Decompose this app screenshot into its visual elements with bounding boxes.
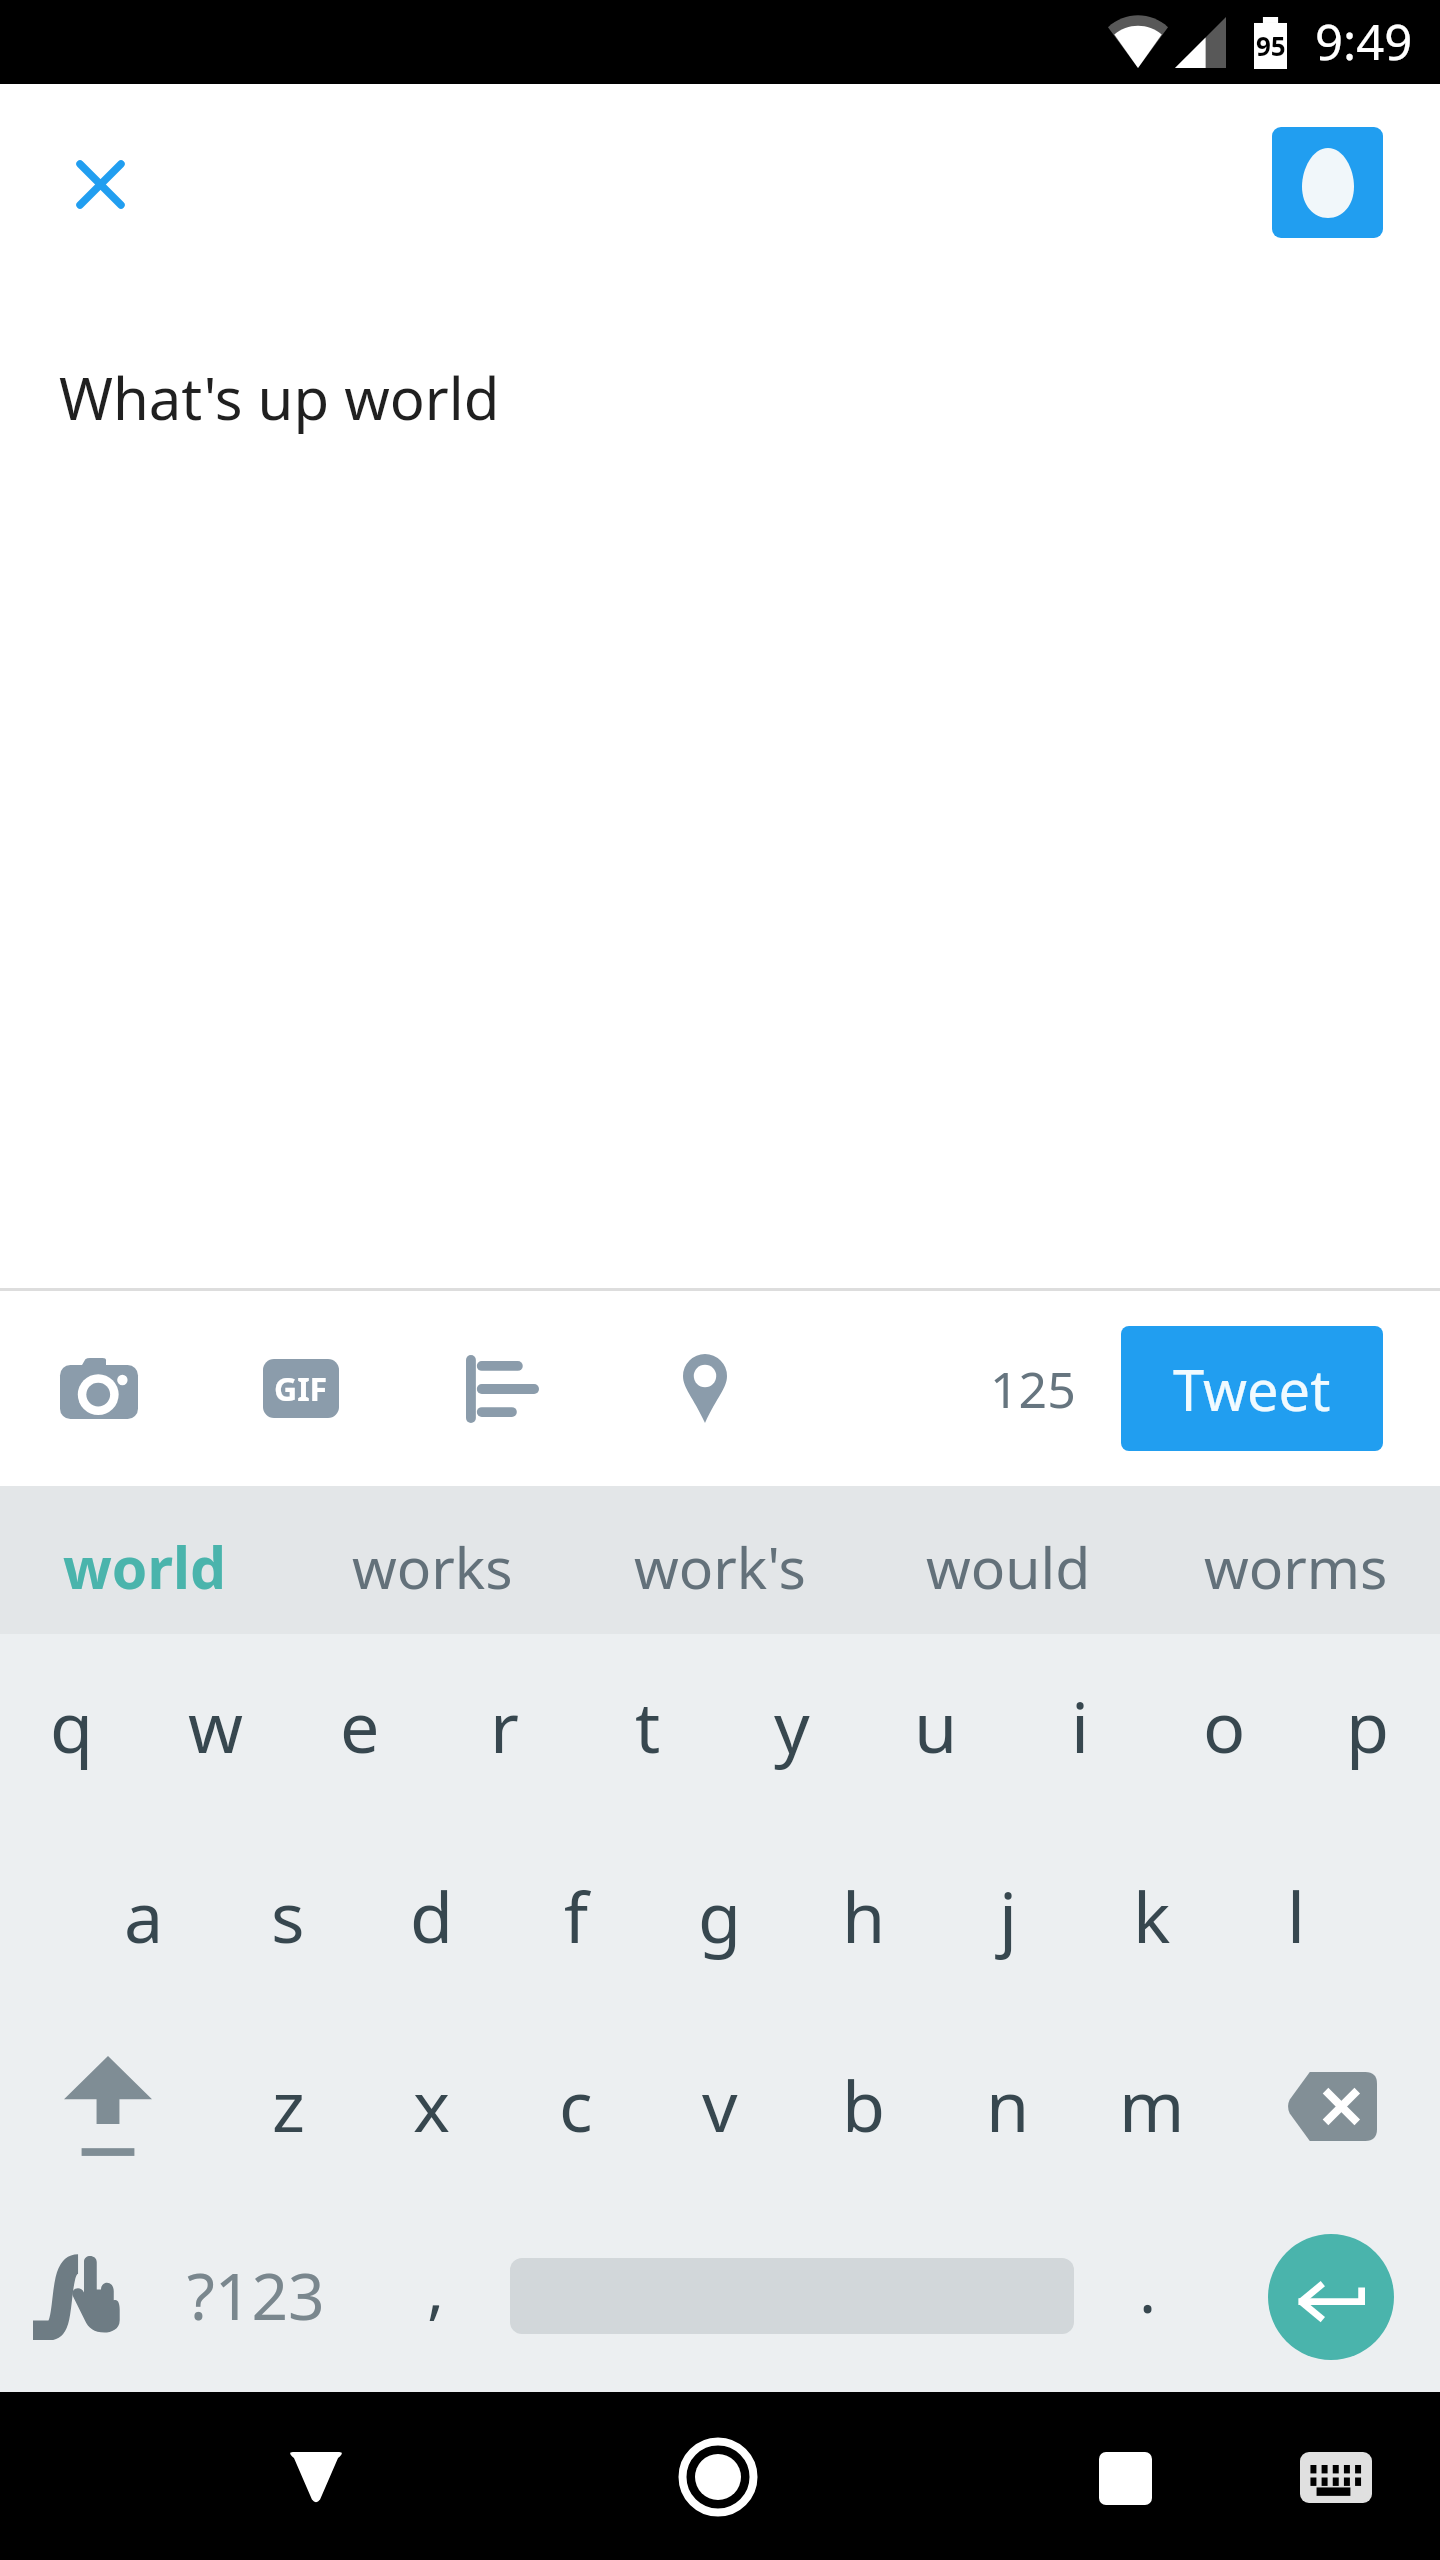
button[interactable]: i [1008, 1642, 1152, 1802]
staticText: 95 [1256, 28, 1286, 63]
staticText: GIF [274, 1367, 328, 1411]
staticText: w [188, 1678, 244, 1773]
staticText: m [1119, 2057, 1185, 2152]
staticText: v [702, 2057, 738, 2152]
staticText: q [50, 1678, 94, 1773]
button[interactable]: c [504, 2007, 648, 2195]
staticText: a [124, 1868, 164, 1963]
button[interactable]: Close [38, 129, 158, 249]
button[interactable]: g [648, 1832, 792, 1992]
button[interactable]: Space [510, 2197, 1074, 2387]
staticText: would [926, 1528, 1091, 1606]
button[interactable]: e [288, 1642, 432, 1802]
staticText: 9:49 [1315, 8, 1413, 75]
staticText: z [272, 2057, 305, 2152]
button[interactable]: h [792, 1832, 936, 1992]
staticText: world [63, 1528, 226, 1606]
button[interactable]: Hide keyboard [236, 2392, 396, 2560]
staticText: k [1133, 1868, 1171, 1963]
button[interactable]: Home [638, 2392, 798, 2560]
button[interactable]: y [720, 1642, 864, 1802]
staticText: , [427, 2245, 445, 2332]
button[interactable]: n [936, 2007, 1080, 2195]
button[interactable]: x [360, 2007, 504, 2195]
staticText: s [271, 1868, 305, 1963]
staticText: n [986, 2057, 1030, 2152]
staticText: p [1346, 1678, 1390, 1773]
button[interactable]: v [648, 2007, 792, 2195]
staticText: work's [634, 1528, 806, 1606]
staticText: . [1139, 2245, 1157, 2332]
button[interactable]: f [504, 1832, 648, 1992]
button[interactable]: r [432, 1642, 576, 1802]
button[interactable]: . [1074, 2197, 1222, 2387]
button[interactable]: Location [615, 1291, 795, 1486]
staticText: t [635, 1678, 661, 1773]
staticText: Tweet [1173, 1351, 1331, 1427]
staticText: u [914, 1678, 958, 1773]
button[interactable]: l [1224, 1832, 1368, 1992]
button[interactable]: Tweet [1121, 1326, 1383, 1451]
button[interactable]: Profile [1272, 127, 1383, 238]
button[interactable]: j [936, 1832, 1080, 1992]
staticText: worms [1204, 1528, 1388, 1606]
button[interactable]: p [1296, 1642, 1440, 1802]
button[interactable]: Switch keyboard [1256, 2392, 1416, 2560]
staticText: works [352, 1528, 513, 1606]
button[interactable]: Recents [1045, 2392, 1205, 2560]
staticText: y [774, 1678, 810, 1773]
button[interactable]: d [360, 1832, 504, 1992]
staticText: o [1203, 1678, 1246, 1773]
button[interactable]: w [144, 1642, 288, 1802]
staticText: x [413, 2057, 451, 2152]
button[interactable]: Poll [413, 1291, 593, 1486]
button[interactable]: works [288, 1486, 576, 1634]
staticText: e [340, 1678, 380, 1773]
button[interactable]: a [72, 1832, 216, 1992]
button[interactable]: o [1152, 1642, 1296, 1802]
button[interactable]: would [864, 1486, 1152, 1634]
staticText: l [1287, 1868, 1306, 1963]
button[interactable]: work's [576, 1486, 864, 1634]
staticText: r [490, 1678, 519, 1773]
button[interactable]: worms [1152, 1486, 1440, 1634]
staticText: f [564, 1868, 589, 1963]
button[interactable]: z [216, 2007, 360, 2195]
staticText: c [559, 2057, 593, 2152]
button[interactable]: Add GIF [211, 1291, 391, 1486]
button[interactable]: Enter [1222, 2197, 1440, 2387]
button[interactable]: q [0, 1642, 144, 1802]
button[interactable]: world [0, 1486, 288, 1634]
button[interactable]: m [1080, 2007, 1224, 2195]
staticText: d [410, 1868, 454, 1963]
button[interactable]: k [1080, 1832, 1224, 1992]
staticText: ?123 [187, 2252, 325, 2339]
button[interactable]: u [864, 1642, 1008, 1802]
button[interactable]: Backspace [1224, 2007, 1440, 2195]
button[interactable]: ?123 [150, 2197, 362, 2387]
staticText: j [999, 1868, 1018, 1963]
button[interactable]: b [792, 2007, 936, 2195]
staticText: b [842, 2057, 886, 2152]
button[interactable]: Handwriting [0, 2197, 150, 2387]
staticText: h [842, 1868, 886, 1963]
button[interactable]: , [362, 2197, 510, 2387]
staticText: What's up world [59, 358, 500, 437]
button[interactable]: Shift [0, 2007, 216, 2195]
button[interactable]: Add photo [9, 1291, 189, 1486]
staticText: 125 [990, 1355, 1076, 1423]
button[interactable]: s [216, 1832, 360, 1992]
button[interactable]: t [576, 1642, 720, 1802]
staticText: i [1071, 1678, 1090, 1773]
staticText: g [698, 1868, 742, 1963]
